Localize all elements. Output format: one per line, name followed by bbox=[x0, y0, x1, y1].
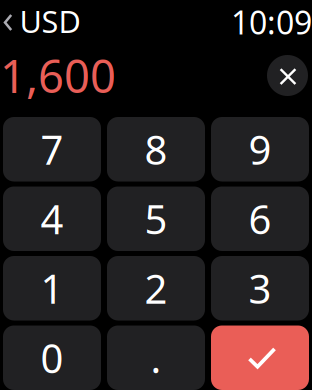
button[interactable]: Clear amount bbox=[267, 55, 308, 96]
button[interactable]: 6 bbox=[211, 186, 309, 251]
button[interactable]: 7 bbox=[3, 117, 101, 181]
staticText: 3 bbox=[248, 262, 271, 315]
button[interactable]: 5 bbox=[107, 186, 205, 251]
staticText: 0 bbox=[40, 331, 63, 384]
staticText: 7 bbox=[40, 123, 63, 176]
staticText: 9 bbox=[248, 123, 271, 176]
staticText: 8 bbox=[144, 123, 167, 176]
button[interactable]: 3 bbox=[211, 256, 309, 320]
staticText: 5 bbox=[144, 192, 167, 245]
button[interactable]: 2 bbox=[107, 256, 205, 320]
button[interactable]: 8 bbox=[107, 117, 205, 181]
staticText: 1,600 bbox=[0, 45, 116, 106]
button[interactable]: USD bbox=[0, 6, 85, 36]
button[interactable]: 4 bbox=[3, 186, 101, 251]
staticText: 4 bbox=[40, 192, 63, 245]
button[interactable]: . bbox=[107, 325, 205, 390]
button[interactable]: 9 bbox=[211, 117, 309, 181]
staticText: 2 bbox=[144, 262, 167, 315]
button[interactable]: 1 bbox=[3, 256, 101, 320]
staticText: USD bbox=[19, 1, 80, 41]
staticText: 6 bbox=[248, 192, 271, 245]
button[interactable]: Confirm amount bbox=[211, 325, 309, 390]
staticText: 1 bbox=[40, 262, 63, 315]
button[interactable]: 0 bbox=[3, 325, 101, 390]
staticText: 10:09 bbox=[231, 1, 312, 43]
staticText: . bbox=[150, 331, 161, 384]
